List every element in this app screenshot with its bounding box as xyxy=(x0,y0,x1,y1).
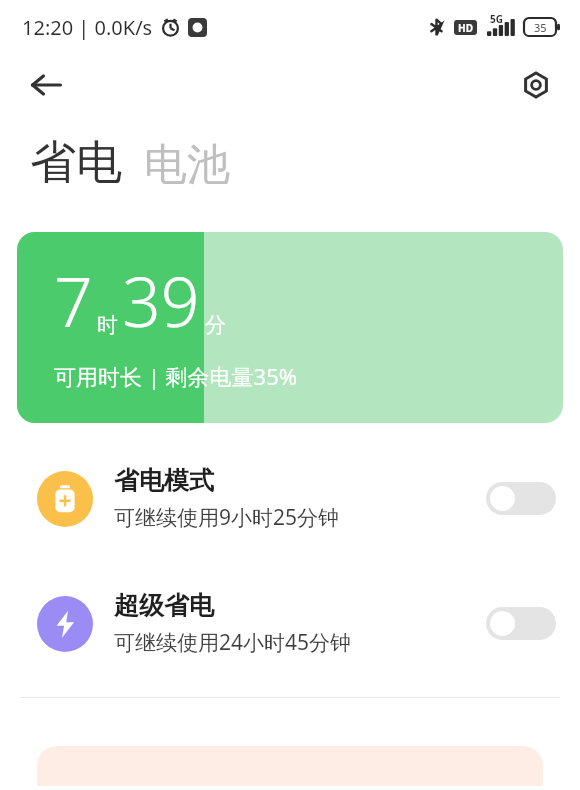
staticText: 电池 xyxy=(144,138,230,192)
staticText: 7 xyxy=(54,254,93,347)
button[interactable]: 省电模式 xyxy=(0,465,580,532)
button[interactable]: Back xyxy=(22,61,70,109)
staticText: 超级省电 xyxy=(114,590,214,621)
staticText: 可继续使用24小时45分钟 xyxy=(114,628,352,657)
button[interactable]: 7 xyxy=(17,232,563,423)
button[interactable]: 电池 xyxy=(144,138,230,192)
button[interactable]: 超级省电 toggle xyxy=(486,607,556,640)
staticText: HD xyxy=(458,21,473,35)
staticText: 可用时长 | 剩余电量35% xyxy=(54,361,298,391)
staticText: 39 xyxy=(122,254,200,347)
staticText: 可继续使用9小时25分钟 xyxy=(114,503,340,532)
staticText: 分 xyxy=(205,312,226,338)
button[interactable]: 超级省电 xyxy=(0,590,580,657)
staticText: 12:20 | 0.0K/s xyxy=(22,14,153,41)
button[interactable]: 省电模式 toggle xyxy=(486,482,556,515)
button[interactable]: 省电 xyxy=(30,134,122,192)
staticText: 5G xyxy=(490,12,503,26)
staticText: 省电模式 xyxy=(114,465,214,496)
staticText: 35 xyxy=(534,20,547,35)
staticText: 时 xyxy=(97,312,118,338)
button[interactable]: Settings xyxy=(512,61,560,109)
staticText: 省电 xyxy=(30,134,122,192)
